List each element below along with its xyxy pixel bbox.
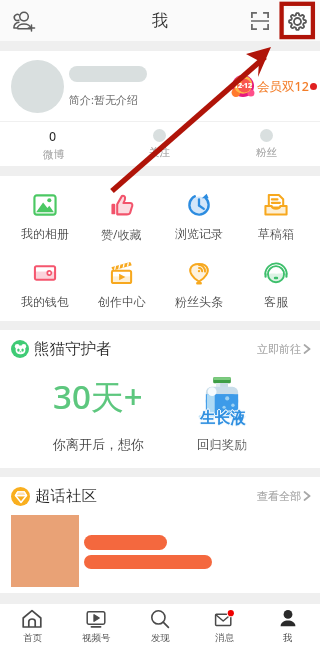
staticText: 我: [283, 632, 293, 644]
staticText: 关注: [149, 146, 170, 159]
staticText: 草稿箱: [258, 226, 294, 241]
button[interactable]: 草稿箱: [237, 193, 314, 241]
staticText: 生长液: [200, 409, 245, 428]
staticText: 客服: [264, 294, 288, 309]
button[interactable]: 客服: [237, 261, 314, 309]
staticText: 赞/收藏: [101, 226, 142, 242]
button[interactable]: 赞/收藏: [83, 193, 160, 242]
staticText: 我的相册: [21, 226, 69, 241]
staticText: 创作中心: [98, 294, 146, 309]
staticText: 我的钱包: [21, 294, 69, 309]
staticText: 发现: [151, 632, 170, 644]
staticText: 微博: [43, 148, 64, 161]
button[interactable]: 粉丝头条: [160, 261, 237, 309]
staticText: 查看全部: [257, 489, 301, 503]
staticText: 粉丝头条: [175, 294, 223, 309]
button[interactable]: 0: [0, 122, 106, 166]
staticText: 生长液: [201, 409, 246, 428]
button[interactable]: 30天+: [38, 368, 158, 468]
staticText: 你离开后，想你: [53, 436, 144, 452]
button[interactable]: 我的钱包: [6, 261, 83, 309]
button[interactable]: 首页: [0, 604, 64, 648]
button[interactable]: 创作中心: [83, 261, 160, 309]
button[interactable]: 我的相册: [6, 193, 83, 241]
staticText: 生长液: [199, 409, 244, 428]
staticText: 浏览记录: [175, 226, 223, 241]
button[interactable]: 发现: [128, 604, 192, 648]
staticText: 立即前往: [257, 342, 301, 356]
button[interactable]: 我: [256, 604, 320, 648]
staticText: 30天+: [53, 374, 143, 419]
staticText: 回归奖励: [197, 437, 247, 453]
staticText: 超话社区: [35, 486, 97, 506]
staticText: 粉丝: [256, 146, 277, 159]
staticText: 熊猫守护者: [34, 339, 112, 359]
button[interactable]: Settings: [282, 6, 312, 36]
button[interactable]: 关注: [106, 122, 213, 166]
staticText: 会员双12: [257, 78, 309, 95]
button[interactable]: Scan QR code: [245, 6, 275, 36]
staticText: 0: [49, 128, 57, 145]
button[interactable]: 12·12: [232, 75, 319, 97]
staticText: 生长液: [200, 410, 245, 429]
staticText: 简介:暂无介绍: [69, 92, 138, 107]
button[interactable]: 浏览记录: [160, 193, 237, 241]
button[interactable]: 视频号: [64, 604, 128, 648]
button[interactable]: 超话社区: [11, 477, 310, 515]
button[interactable]: 粉丝: [213, 122, 320, 166]
staticText: 首页: [23, 632, 42, 644]
staticText: 视频号: [82, 632, 111, 644]
button[interactable]: Add friends: [11, 8, 37, 34]
staticText: 12·12: [234, 81, 252, 91]
staticText: 消息: [215, 632, 234, 644]
button[interactable]: 消息: [192, 604, 256, 648]
button[interactable]: 熊猫守护者: [11, 330, 310, 368]
staticText: 生长液: [200, 408, 245, 427]
button[interactable]: 生长液: [172, 368, 272, 468]
button[interactable]: [11, 60, 64, 113]
staticText: 我: [152, 10, 169, 31]
